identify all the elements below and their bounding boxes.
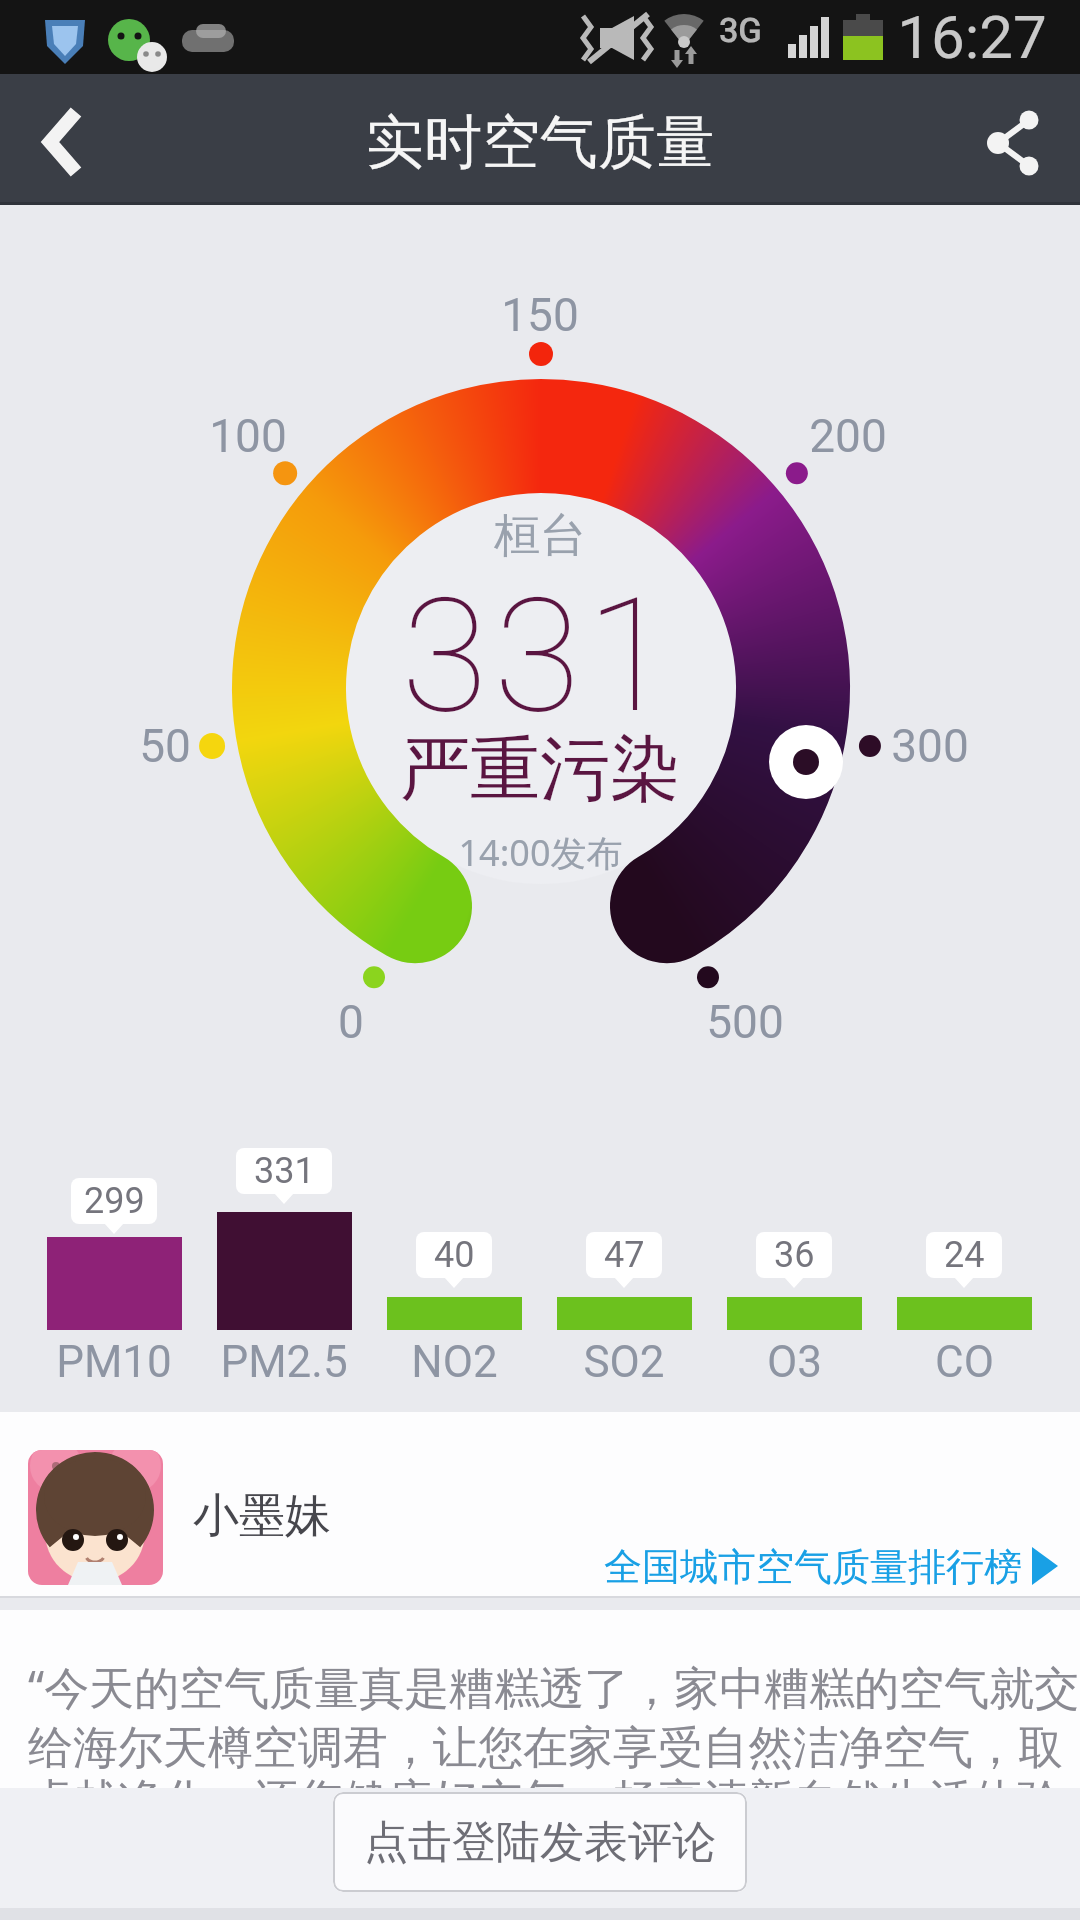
staticText: 50	[139, 719, 191, 773]
staticText: 300	[891, 719, 969, 773]
staticText: 200	[809, 409, 887, 463]
button[interactable]: 点击登陆发表评论	[333, 1792, 747, 1892]
button[interactable]: 全国城市空气质量排行榜	[600, 1537, 1060, 1597]
staticText: 100	[209, 409, 287, 463]
staticText: 16:27	[897, 2, 1047, 72]
staticText: 299	[84, 1180, 145, 1222]
staticText: 给海尔天樽空调君，让您在家享受自然洁净空气，取	[28, 1720, 1063, 1777]
button[interactable]	[20, 94, 130, 189]
staticText: 150	[501, 288, 579, 342]
staticText: O3	[767, 1336, 822, 1388]
staticText: SO2	[583, 1336, 665, 1388]
staticText: 小墨妹	[193, 1487, 331, 1545]
button[interactable]	[960, 104, 1070, 184]
staticText: NO2	[411, 1336, 498, 1388]
staticText: 24	[944, 1234, 985, 1276]
staticText: 47	[604, 1234, 645, 1276]
staticText: 严重污染	[400, 726, 680, 814]
staticText: PM10	[56, 1336, 172, 1388]
staticText: “今天的空气质量真是糟糕透了，家中糟糕的空气就交	[28, 1656, 1080, 1717]
staticText: PM2.5	[220, 1336, 348, 1388]
staticText: 桓台	[494, 507, 586, 565]
staticText: 实时空气质量	[366, 106, 714, 179]
staticText: 331	[401, 563, 679, 748]
staticText: 3G	[719, 10, 762, 50]
staticText: CO	[935, 1336, 994, 1388]
staticText: 卓越净化，还您健康好空气，畅享清新自然生活体验	[28, 1773, 1063, 1788]
staticText: 500	[706, 995, 784, 1049]
staticText: 331	[254, 1150, 315, 1192]
staticText: 14:00发布	[458, 828, 623, 877]
staticText: 36	[774, 1234, 815, 1276]
staticText: 0	[338, 995, 364, 1049]
staticText: 40	[434, 1234, 475, 1276]
staticText: 点击登陆发表评论	[364, 1815, 716, 1870]
staticText: 全国城市空气质量排行榜	[604, 1543, 1022, 1591]
